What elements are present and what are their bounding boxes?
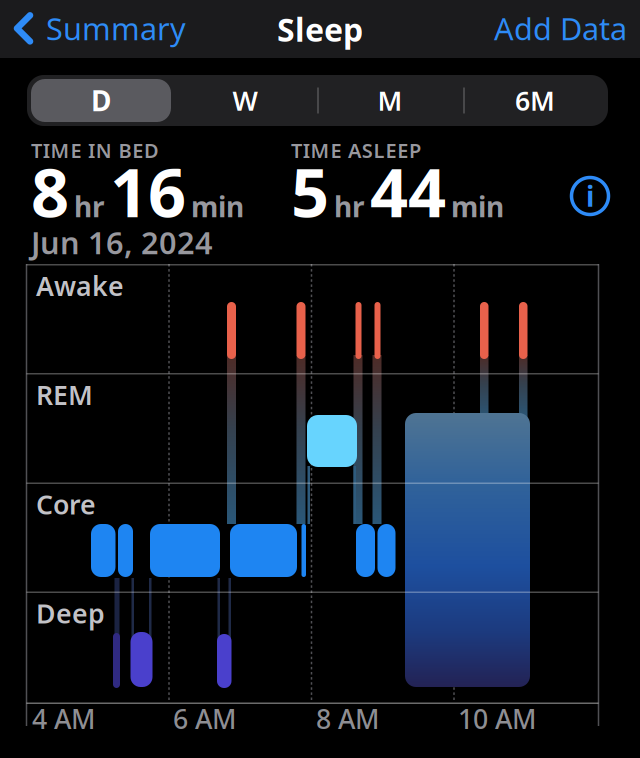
- staticText: TIME IN BED: [31, 137, 159, 164]
- staticText: W: [232, 83, 257, 118]
- button[interactable]: 6M: [463, 75, 607, 126]
- staticText: Add Data: [494, 8, 627, 49]
- staticText: hr: [334, 188, 365, 225]
- button[interactable]: W: [173, 75, 317, 126]
- staticText: TIME ASLEEP: [291, 137, 421, 164]
- staticText: 8: [31, 147, 69, 235]
- button[interactable]: Add Data: [494, 8, 627, 49]
- staticText: 10 AM: [458, 701, 536, 736]
- staticText: 4 AM: [32, 701, 95, 736]
- staticText: D: [91, 82, 111, 119]
- staticText: Jun 16, 2024: [31, 222, 213, 263]
- staticText: hr: [74, 188, 105, 225]
- staticText: M: [377, 83, 402, 118]
- staticText: Summary: [46, 8, 186, 49]
- staticText: 5: [291, 147, 329, 235]
- staticText: 6M: [515, 83, 555, 118]
- button[interactable]: About Sleep: [570, 176, 610, 216]
- staticText: 6 AM: [173, 701, 236, 736]
- button[interactable]: Summary: [14, 8, 186, 49]
- button[interactable]: M: [318, 75, 462, 126]
- staticText: min: [451, 188, 504, 225]
- staticText: Deep: [36, 595, 105, 631]
- staticText: Sleep: [277, 8, 363, 50]
- staticText: REM: [36, 377, 93, 412]
- staticText: Awake: [36, 268, 124, 303]
- staticText: 8 AM: [316, 701, 379, 736]
- button[interactable]: D: [31, 79, 171, 122]
- staticText: i: [586, 177, 594, 215]
- staticText: 44: [370, 147, 446, 235]
- staticText: min: [191, 188, 244, 225]
- staticText: Core: [36, 486, 96, 522]
- staticText: 16: [110, 147, 186, 235]
